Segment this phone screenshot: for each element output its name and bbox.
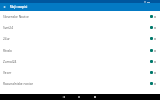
staticText: Racunalniske novice (3, 82, 34, 86)
button[interactable]: Slovenske Novice (0, 11, 160, 22)
button[interactable]: Toggle newspaper (150, 69, 158, 76)
staticText: Slovenske Novice (3, 15, 29, 19)
button[interactable]: Toggle newspaper (150, 47, 158, 54)
button[interactable]: Toggle newspaper (150, 13, 158, 20)
button[interactable]: Home (75, 94, 83, 100)
staticText: Zurnal24 (3, 60, 17, 64)
staticText: Vecer (3, 71, 12, 75)
button[interactable]: Toggle newspaper (150, 58, 158, 65)
staticText: 24ur (3, 37, 10, 41)
staticText: Moji casopisi (10, 5, 28, 9)
button[interactable]: 24ur (0, 33, 160, 44)
button[interactable]: Racunalniske novice (0, 78, 160, 89)
button[interactable]: Rtvslo (0, 45, 160, 56)
button[interactable]: Svet24 (0, 22, 160, 33)
button[interactable]: Recent apps (91, 94, 99, 100)
button[interactable]: Toggle newspaper (150, 24, 158, 31)
button[interactable]: Vecer (0, 67, 160, 78)
staticText: Rtvslo (3, 49, 13, 53)
button[interactable]: Back (0, 3, 9, 11)
staticText: Svet24 (3, 26, 13, 30)
button[interactable]: Zurnal24 (0, 56, 160, 67)
button[interactable]: Toggle newspaper (150, 80, 158, 87)
button[interactable]: Back (59, 94, 67, 100)
button[interactable]: Toggle newspaper (150, 35, 158, 42)
